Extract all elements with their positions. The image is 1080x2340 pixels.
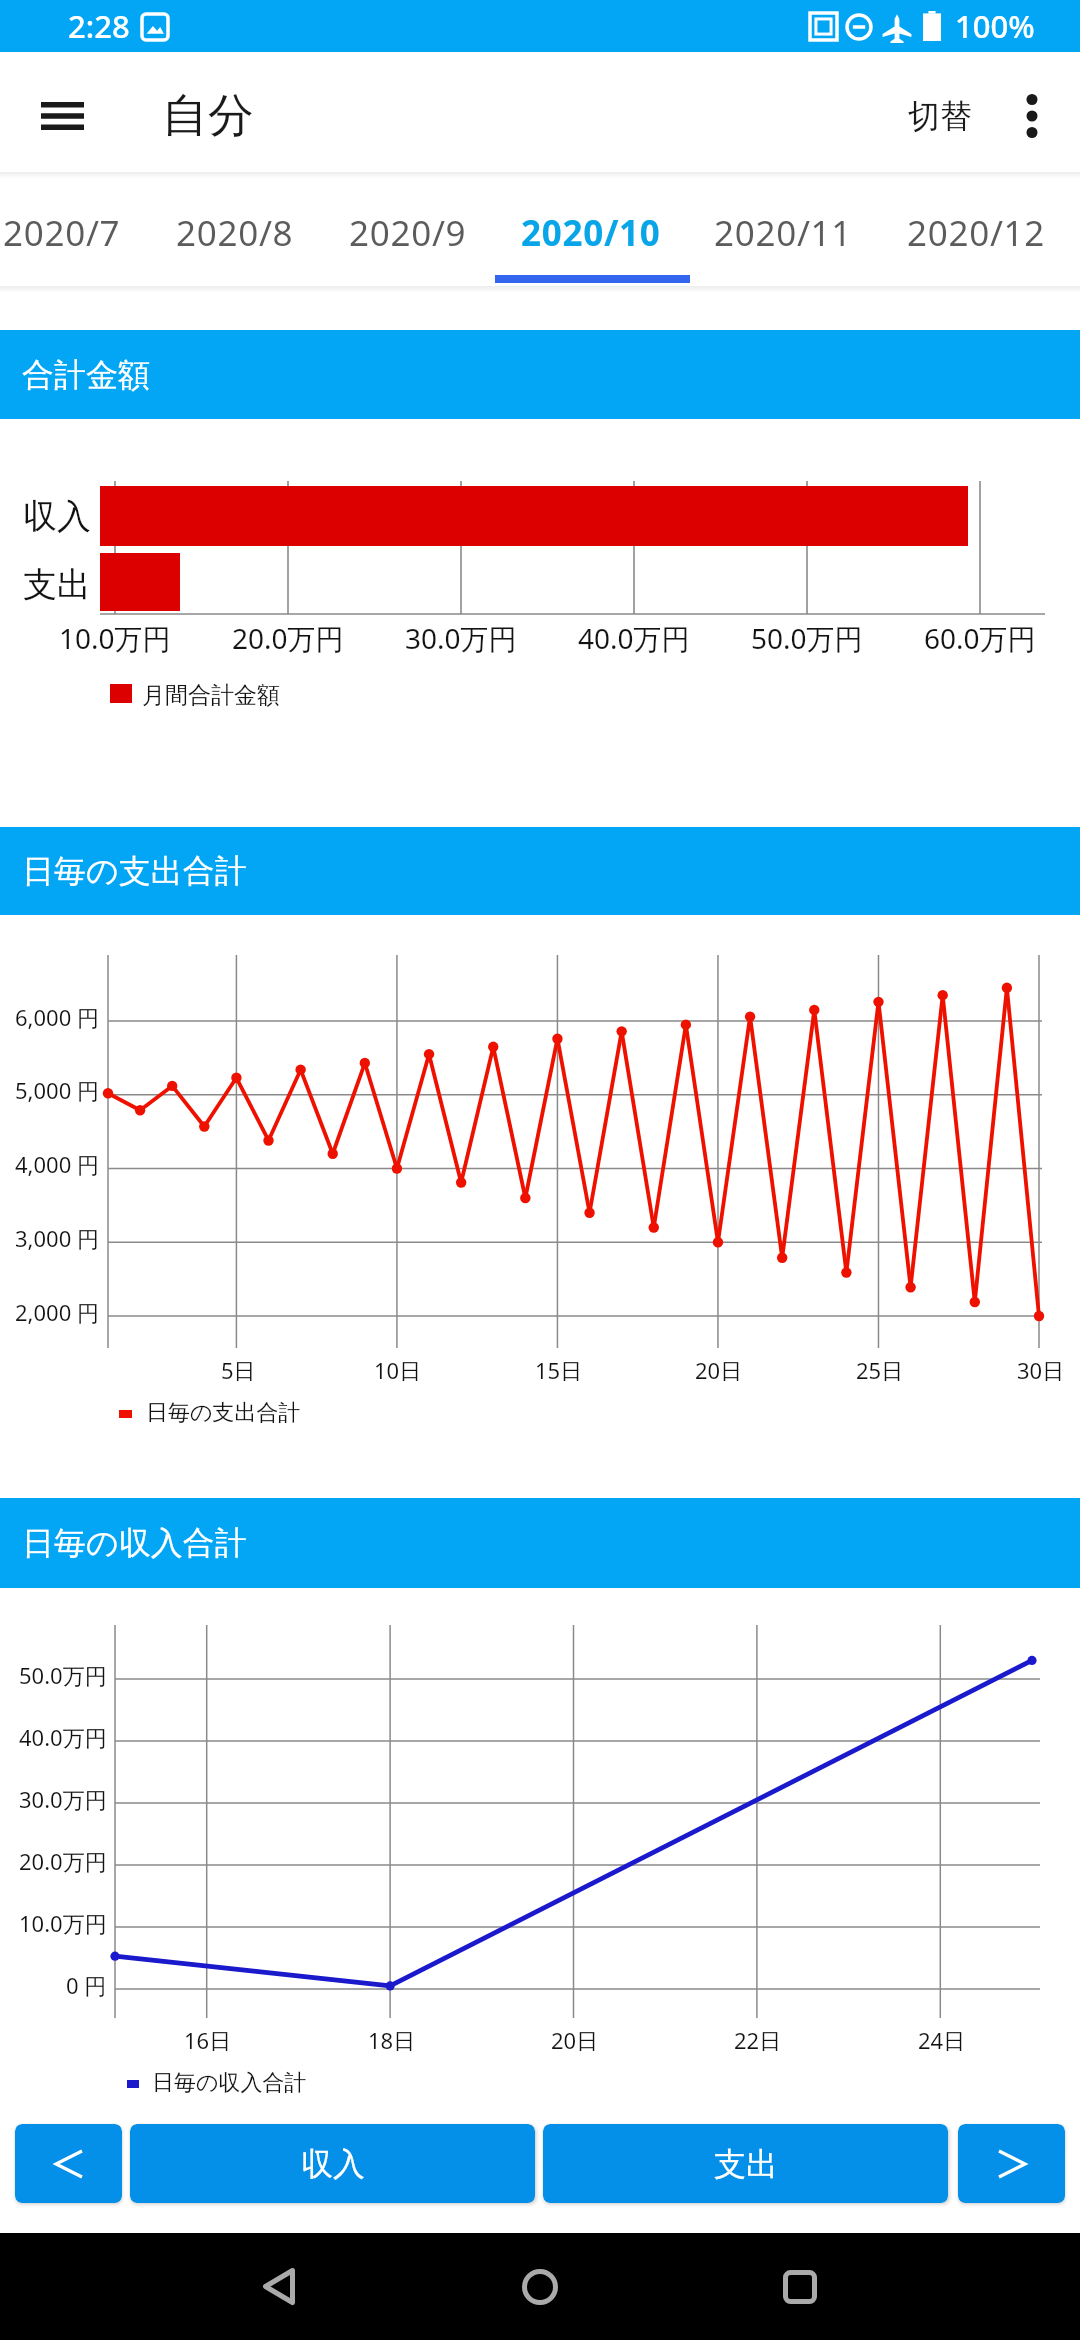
staticText: 10.0万円: [19, 1908, 107, 1938]
button[interactable]: Home: [480, 2233, 600, 2340]
button[interactable]: 2020/8: [148, 179, 321, 286]
staticText: 30日: [1017, 1355, 1065, 1385]
staticText: 20.0万円: [232, 619, 344, 657]
staticText: 日毎の収入合計: [152, 2069, 307, 2097]
button[interactable]: Recents: [740, 2233, 860, 2340]
staticText: 10.0万円: [59, 619, 171, 657]
button[interactable]: 2020/12: [880, 179, 1073, 286]
staticText: 収入: [301, 2144, 365, 2184]
staticText: 50.0万円: [751, 619, 863, 657]
staticText: 2020/9: [349, 209, 467, 257]
staticText: 24日: [918, 2025, 966, 2055]
staticText: 2020/11: [714, 209, 853, 257]
staticText: 支出: [23, 563, 91, 606]
staticText: 6,000 円: [15, 1002, 99, 1032]
staticText: 10日: [374, 1355, 422, 1385]
staticText: 40.0万円: [19, 1722, 107, 1752]
staticText: 切替: [908, 96, 972, 136]
button[interactable]: 収入: [130, 2124, 535, 2203]
staticText: 60.0万円: [924, 619, 1036, 657]
staticText: 3,000 円: [15, 1223, 99, 1253]
staticText: 日毎の支出合計: [146, 1399, 301, 1427]
staticText: 月間合計金額: [142, 681, 280, 710]
button[interactable]: Menu: [20, 74, 104, 158]
staticText: 50.0万円: [19, 1660, 107, 1690]
staticText: 18日: [368, 2025, 416, 2055]
staticText: 支出: [714, 2144, 778, 2184]
button[interactable]: 2020/7: [0, 179, 148, 286]
staticText: 日毎の支出合計: [22, 851, 247, 891]
staticText: 2:28: [68, 5, 130, 47]
staticText: 2020/12: [907, 209, 1046, 257]
staticText: 2020/10: [521, 209, 661, 257]
staticText: 40.0万円: [578, 619, 690, 657]
staticText: 収入: [23, 495, 91, 538]
staticText: 自分: [162, 87, 254, 145]
staticText: 2020/8: [176, 209, 294, 257]
staticText: 0 円: [66, 1970, 107, 2000]
staticText: 4,000 円: [15, 1149, 99, 1179]
staticText: 25日: [856, 1355, 904, 1385]
staticText: 2020/7: [3, 209, 121, 257]
button[interactable]: 2020/11: [687, 179, 880, 286]
button[interactable]: Previous: [15, 2124, 122, 2203]
staticText: 22日: [734, 2025, 782, 2055]
staticText: 2,000 円: [15, 1297, 99, 1327]
staticText: 15日: [535, 1355, 583, 1385]
button[interactable]: 支出: [543, 2124, 948, 2203]
staticText: 16日: [184, 2025, 232, 2055]
staticText: 5日: [221, 1355, 256, 1385]
button[interactable]: 2020/9: [321, 179, 494, 286]
staticText: 20日: [695, 1355, 743, 1385]
staticText: 30.0万円: [19, 1784, 107, 1814]
button[interactable]: Next: [958, 2124, 1065, 2203]
button[interactable]: 切替: [880, 74, 1000, 158]
button[interactable]: Back: [219, 2233, 339, 2340]
staticText: 100%: [955, 5, 1035, 47]
button[interactable]: More options: [990, 74, 1074, 158]
staticText: 合計金額: [22, 355, 150, 395]
staticText: 日毎の収入合計: [22, 1523, 247, 1563]
staticText: 20.0万円: [19, 1846, 107, 1876]
staticText: 20日: [551, 2025, 599, 2055]
button[interactable]: 2020/10: [494, 179, 687, 286]
staticText: 5,000 円: [15, 1075, 99, 1105]
staticText: 30.0万円: [405, 619, 517, 657]
